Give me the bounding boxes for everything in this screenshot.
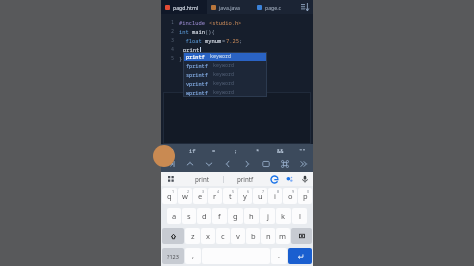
button[interactable]: n bbox=[261, 228, 275, 244]
staticText: y bbox=[243, 191, 247, 201]
button[interactable]: Up bbox=[180, 156, 199, 172]
button[interactable]: vprintf bbox=[183, 79, 267, 88]
staticText: o bbox=[288, 191, 293, 201]
button[interactable]: ; bbox=[225, 144, 247, 156]
button[interactable]: Tab bbox=[161, 156, 180, 172]
staticText: e bbox=[198, 191, 203, 201]
staticText: 3 bbox=[171, 37, 175, 44]
staticText: (){ bbox=[205, 28, 215, 35]
staticText: m bbox=[279, 231, 287, 241]
button[interactable]: b bbox=[246, 228, 260, 244]
staticText: 4 bbox=[171, 46, 175, 53]
button[interactable]: wprintf bbox=[183, 88, 267, 97]
staticText: d bbox=[202, 211, 207, 221]
button[interactable]: h bbox=[244, 208, 259, 224]
button[interactable]: v bbox=[231, 228, 245, 244]
button[interactable]: p bbox=[298, 188, 312, 204]
button[interactable]: File list bbox=[296, 0, 313, 14]
staticText: n bbox=[266, 231, 271, 241]
staticText: 1 bbox=[171, 19, 175, 26]
button[interactable]: Down bbox=[199, 156, 218, 172]
button[interactable]: a bbox=[167, 208, 181, 224]
button[interactable]: sprintf bbox=[183, 70, 267, 79]
button[interactable]: Translate bbox=[282, 172, 297, 186]
button[interactable]: q bbox=[162, 188, 177, 204]
staticText: 7 bbox=[262, 189, 265, 194]
button[interactable]: Clipboard bbox=[161, 172, 181, 186]
button[interactable]: Command bbox=[275, 156, 294, 172]
button[interactable]: {} bbox=[161, 144, 182, 156]
button[interactable]: u bbox=[253, 188, 267, 204]
staticText: 5 bbox=[232, 189, 235, 194]
staticText: <studio.h> bbox=[209, 19, 242, 26]
staticText: k bbox=[281, 211, 286, 221]
button[interactable]: = bbox=[203, 144, 225, 156]
button[interactable]: d bbox=[197, 208, 211, 224]
button[interactable]: Period bbox=[271, 248, 287, 264]
button[interactable]: m bbox=[276, 228, 290, 244]
button[interactable]: java.java bbox=[207, 0, 253, 14]
button[interactable]: g bbox=[228, 208, 243, 224]
button[interactable]: Right bbox=[237, 156, 256, 172]
staticText: ; bbox=[234, 147, 238, 154]
button[interactable]: c bbox=[216, 228, 230, 244]
button[interactable]: Comma bbox=[185, 248, 201, 264]
button[interactable]: Backspace bbox=[291, 228, 312, 244]
button[interactable]: Voice input bbox=[297, 172, 313, 186]
staticText: l bbox=[299, 211, 301, 221]
button[interactable]: j bbox=[260, 208, 275, 224]
button[interactable]: l bbox=[292, 208, 307, 224]
staticText: a bbox=[172, 211, 177, 221]
staticText: float bbox=[179, 37, 205, 44]
staticText: int bbox=[179, 28, 192, 35]
button[interactable]: r bbox=[208, 188, 222, 204]
button[interactable]: i bbox=[268, 188, 282, 204]
staticText: g bbox=[233, 211, 238, 221]
staticText: if bbox=[189, 147, 196, 154]
button[interactable]: printf bbox=[224, 172, 266, 186]
staticText: 6 bbox=[247, 189, 250, 194]
button[interactable]: t bbox=[223, 188, 237, 204]
button[interactable]: pagd.html bbox=[161, 0, 207, 14]
staticText: = bbox=[212, 147, 216, 154]
button[interactable]: More bbox=[294, 156, 313, 172]
staticText: sprintf bbox=[186, 71, 208, 78]
staticText: 2 bbox=[171, 28, 175, 35]
button[interactable]: fprintf bbox=[183, 61, 267, 70]
button[interactable]: e bbox=[193, 188, 207, 204]
button[interactable]: Shift bbox=[162, 228, 184, 244]
button[interactable]: y bbox=[238, 188, 252, 204]
staticText: 0 bbox=[307, 189, 310, 194]
staticText: 1 bbox=[172, 189, 175, 194]
button[interactable]: o bbox=[283, 188, 297, 204]
button[interactable]: f bbox=[212, 208, 227, 224]
button[interactable]: "" bbox=[291, 144, 313, 156]
button[interactable]: z bbox=[185, 228, 200, 244]
button[interactable]: k bbox=[276, 208, 291, 224]
button[interactable]: s bbox=[182, 208, 196, 224]
staticText: , bbox=[192, 251, 194, 261]
button[interactable]: print bbox=[181, 172, 223, 186]
staticText: ?123 bbox=[167, 253, 179, 260]
button[interactable]: page.c bbox=[253, 0, 296, 14]
button[interactable]: * bbox=[247, 144, 269, 156]
staticText: {} bbox=[168, 147, 175, 154]
button[interactable]: Enter bbox=[288, 248, 312, 264]
button[interactable]: if bbox=[182, 144, 203, 156]
button[interactable]: Symbols bbox=[162, 248, 184, 264]
button[interactable]: Gboard bbox=[266, 172, 282, 186]
staticText: print bbox=[183, 46, 200, 53]
button[interactable]: All bbox=[256, 156, 275, 172]
staticText: #include bbox=[179, 19, 209, 26]
button[interactable]: && bbox=[269, 144, 291, 156]
staticText: java.java bbox=[219, 4, 240, 11]
staticText: j bbox=[267, 211, 269, 221]
button[interactable]: w bbox=[178, 188, 192, 204]
button[interactable]: Left bbox=[218, 156, 237, 172]
button[interactable]: printf bbox=[183, 52, 267, 61]
staticText: h bbox=[249, 211, 254, 221]
staticText: 3 bbox=[202, 189, 205, 194]
button[interactable]: x bbox=[201, 228, 215, 244]
staticText: * bbox=[256, 147, 260, 154]
